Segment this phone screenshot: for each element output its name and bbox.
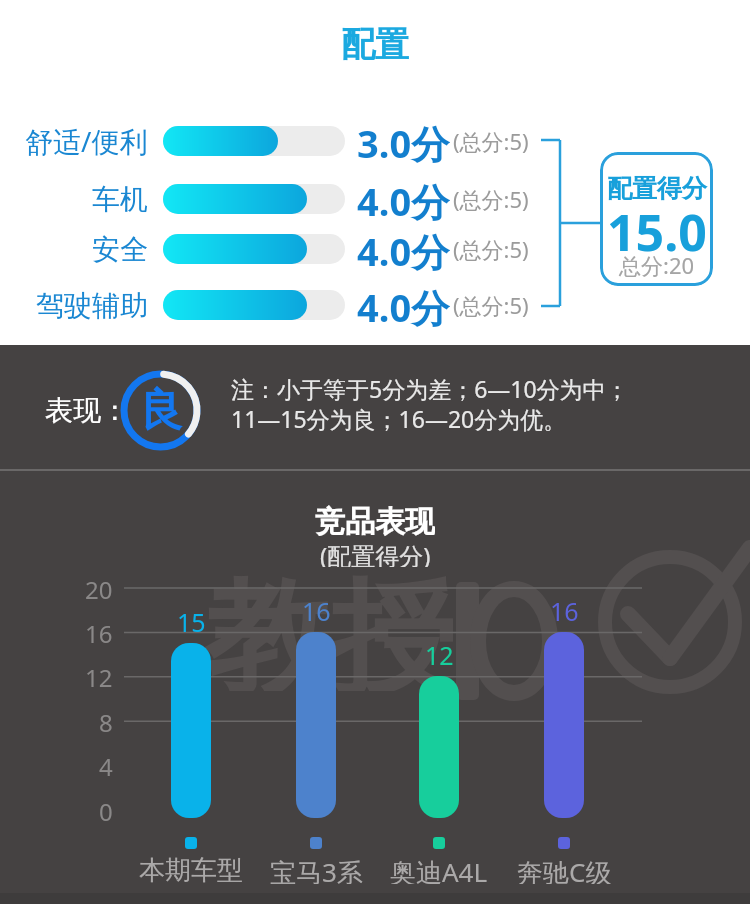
staticText: (配置得分) bbox=[320, 539, 431, 567]
staticText: 总分:20 bbox=[619, 250, 695, 280]
staticText: 奥迪A4L bbox=[390, 854, 488, 884]
staticText: 4.0分 bbox=[357, 225, 450, 273]
staticText: (总分:5) bbox=[453, 290, 529, 320]
staticText: 教授 bbox=[205, 561, 455, 691]
staticText: 奔驰C级 bbox=[517, 854, 612, 884]
staticText: 本期车型 bbox=[139, 854, 243, 884]
staticText: 良 bbox=[139, 383, 183, 438]
staticText: 12 bbox=[425, 638, 454, 670]
staticText: 注：小于等于5分为差；6—10分为中； bbox=[231, 373, 629, 403]
staticText: 16 bbox=[550, 594, 579, 626]
staticText: 20 bbox=[85, 573, 113, 603]
staticText: 4 bbox=[99, 750, 113, 780]
staticText: 15.0 bbox=[607, 198, 707, 254]
staticText: 驾驶辅助 bbox=[36, 288, 148, 323]
staticText: 车机 bbox=[92, 182, 148, 217]
staticText: 8 bbox=[99, 706, 113, 736]
staticText: (总分:5) bbox=[453, 184, 529, 214]
staticText: 舒适/便利 bbox=[25, 122, 148, 160]
staticText: 11—15分为良；16—20分为优。 bbox=[231, 403, 567, 433]
staticText: 0 bbox=[99, 795, 113, 825]
staticText: 12 bbox=[85, 661, 113, 691]
staticText: 宝马3系 bbox=[270, 854, 363, 884]
staticText: (总分:5) bbox=[453, 234, 529, 264]
staticText: 15 bbox=[177, 605, 206, 637]
staticText: 配置得分 bbox=[607, 173, 707, 204]
staticText: 16 bbox=[85, 617, 113, 647]
staticText: 表现： bbox=[45, 393, 129, 428]
staticText: 16 bbox=[302, 594, 331, 626]
staticText: 安全 bbox=[92, 232, 148, 267]
staticText: 竞品表现 bbox=[315, 503, 435, 539]
staticText: 4.0分 bbox=[357, 175, 450, 223]
staticText: (总分:5) bbox=[453, 126, 529, 156]
button[interactable] bbox=[600, 152, 713, 286]
staticText: 4.0分 bbox=[357, 281, 450, 329]
staticText: 配置 bbox=[341, 23, 409, 66]
staticText: 3.0分 bbox=[357, 117, 450, 165]
